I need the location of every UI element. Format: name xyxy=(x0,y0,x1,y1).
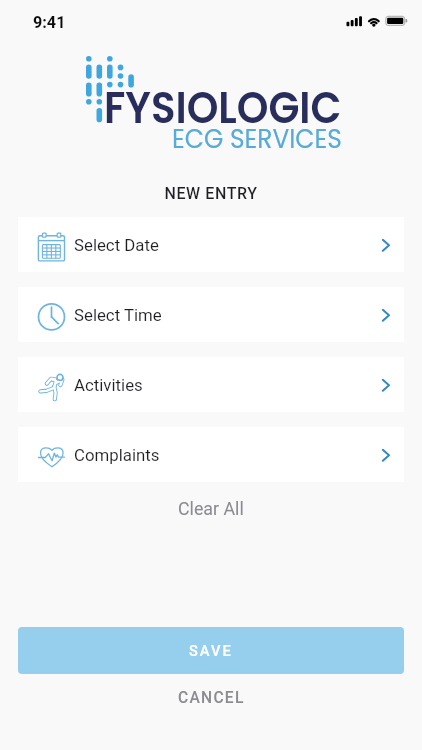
button[interactable]: Complaints xyxy=(18,427,404,482)
staticText: FYSIOLOGIC xyxy=(104,76,342,138)
staticText: SAVE xyxy=(189,642,233,659)
button[interactable]: SAVE xyxy=(18,627,404,674)
staticText: CANCEL xyxy=(178,689,245,707)
staticText: Clear All xyxy=(178,498,244,519)
button[interactable]: Select Date xyxy=(18,217,404,272)
staticText: ECG SERVICES xyxy=(172,120,342,157)
staticText: 9:41 xyxy=(33,13,66,32)
button[interactable]: Clear All xyxy=(0,490,422,526)
button[interactable]: Activities xyxy=(18,357,404,412)
staticText: Select Date xyxy=(74,235,371,255)
other: Select Time xyxy=(371,303,395,327)
staticText: NEW ENTRY xyxy=(0,184,422,203)
staticText: Select Time xyxy=(74,305,371,325)
other: Complaints xyxy=(371,443,395,467)
button[interactable]: Select Time xyxy=(18,287,404,342)
button[interactable]: CANCEL xyxy=(0,674,422,722)
staticText: Complaints xyxy=(74,445,371,465)
other: Select Date xyxy=(371,233,395,257)
staticText: Activities xyxy=(74,375,371,395)
other: Activities xyxy=(371,373,395,397)
